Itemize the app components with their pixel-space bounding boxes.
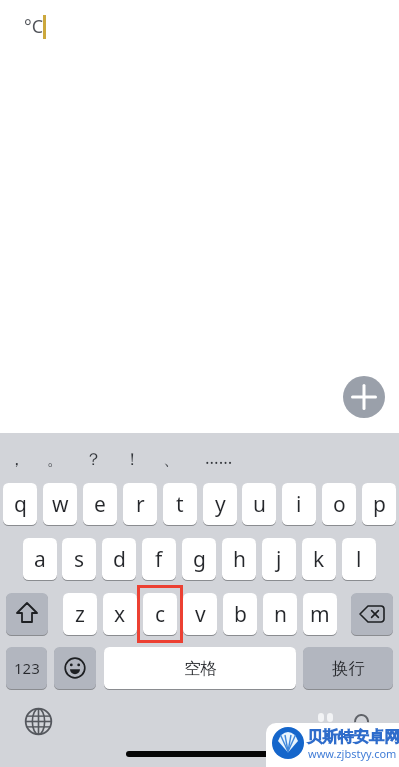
button[interactable]: i [282,483,316,525]
button[interactable]: q [3,483,37,525]
staticText: 贝斯特安卓网 [307,727,399,747]
staticText: p [373,490,386,519]
button[interactable]: f [142,538,176,580]
staticText: o [333,490,346,519]
button[interactable] [351,593,393,635]
button[interactable]: b [223,593,257,635]
button[interactable] [6,593,48,635]
staticText: k [313,545,325,574]
button[interactable]: g [182,538,216,580]
button[interactable]: n [263,593,297,635]
staticText: m [310,600,330,629]
staticText: c [155,600,166,629]
button[interactable]: h [222,538,256,580]
button[interactable]: v [183,593,217,635]
staticText: l [356,545,362,574]
button[interactable]: o [322,483,356,525]
button[interactable]: 、 [163,449,180,470]
staticText: 空格 [184,658,217,679]
button[interactable]: l [342,538,376,580]
button[interactable]: 。 [47,449,64,470]
button[interactable]: u [242,483,276,525]
button[interactable]: s [62,538,96,580]
staticText: e [94,490,106,519]
button[interactable] [54,647,96,689]
button[interactable]: 空格 [104,647,296,689]
staticText: g [193,545,206,574]
button[interactable]: c [143,593,177,635]
button[interactable]: 换行 [303,647,393,689]
button[interactable]: e [83,483,117,525]
button[interactable] [343,376,385,418]
staticText: u [253,490,266,519]
staticText: y [215,490,226,519]
staticText: n [274,600,287,629]
button[interactable]: ？ [85,449,102,470]
button[interactable]: ...... [205,446,233,469]
button[interactable]: x [103,593,137,635]
button[interactable] [24,707,53,736]
button[interactable]: j [262,538,296,580]
button[interactable]: ， [8,449,25,470]
button[interactable]: d [102,538,136,580]
staticText: r [136,490,145,519]
staticText: w [52,490,69,519]
staticText: s [74,545,85,574]
staticText: q [14,490,27,519]
staticText: a [34,545,46,574]
staticText: f [155,545,163,574]
staticText: 123 [14,658,40,678]
staticText: www.zjbstyy.com [308,746,397,761]
staticText: x [114,600,126,629]
staticText: z [75,600,85,629]
button[interactable]: z [63,593,97,635]
staticText: 换行 [332,658,365,679]
staticText: d [113,545,126,574]
button[interactable]: m [303,593,337,635]
button[interactable]: r [123,483,157,525]
staticText: j [276,545,282,574]
button[interactable]: p [362,483,396,525]
staticText: °C [24,14,44,39]
button[interactable]: a [23,538,57,580]
staticText: i [296,490,302,519]
button[interactable]: 123 [6,647,47,689]
staticText: t [176,490,184,519]
staticText: v [195,600,206,629]
staticText: h [233,545,246,574]
button[interactable]: w [43,483,77,525]
button[interactable]: ！ [124,449,141,470]
button[interactable]: y [203,483,237,525]
button[interactable]: t [163,483,197,525]
button[interactable]: k [302,538,336,580]
staticText: b [234,600,247,629]
